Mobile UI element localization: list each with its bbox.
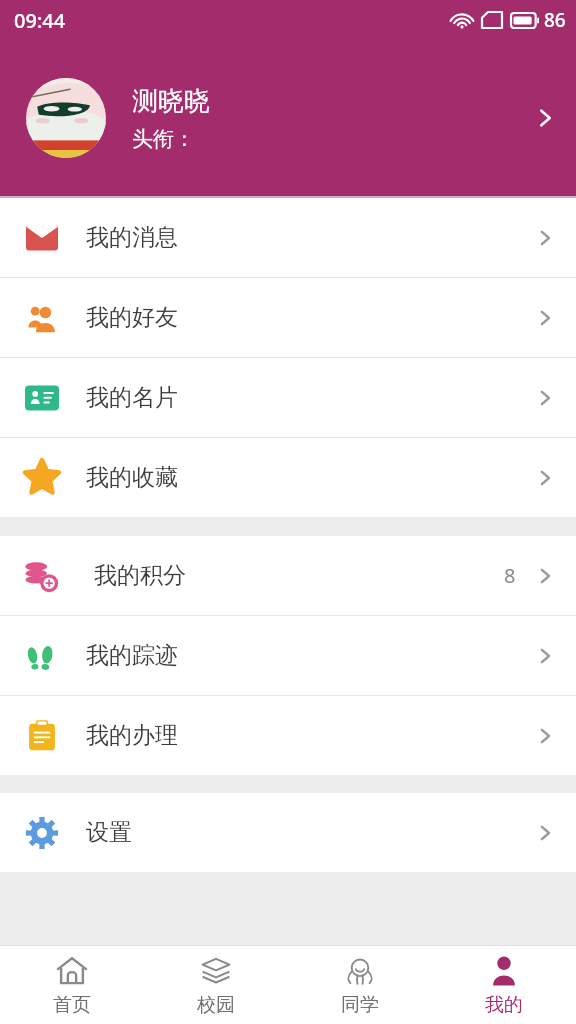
staticText: 8 (504, 562, 516, 589)
staticText: 头衔： (132, 126, 195, 152)
staticText: 09:44 (14, 7, 66, 34)
staticText: 我的好友 (86, 303, 534, 332)
staticText: 我的收藏 (86, 463, 534, 492)
staticText: 同学 (341, 993, 379, 1017)
button[interactable]: 同学 (288, 946, 432, 1024)
button[interactable]: 设置 (0, 793, 576, 872)
staticText: 首页 (53, 993, 91, 1017)
button[interactable]: 首页 (0, 946, 144, 1024)
button[interactable]: 我的收藏 (0, 438, 576, 517)
button[interactable]: 我的办理 (0, 696, 576, 775)
button[interactable]: 我的好友 (0, 278, 576, 357)
button[interactable]: 校园 (144, 946, 288, 1024)
staticText: 校园 (197, 993, 235, 1017)
button[interactable]: 我的 (432, 946, 576, 1024)
button[interactable]: 我的消息 (0, 198, 576, 277)
button[interactable]: 我的名片 (0, 358, 576, 437)
staticText: 我的踪迹 (86, 641, 534, 670)
button[interactable]: 我的积分 (0, 536, 576, 615)
staticText: 我的名片 (86, 383, 534, 412)
staticText: 我的消息 (86, 223, 534, 252)
staticText: 设置 (86, 818, 534, 847)
button[interactable]: 测晓晓 (0, 40, 576, 196)
staticText: 我的办理 (86, 721, 534, 750)
staticText: 86 (544, 7, 566, 33)
button[interactable]: 我的踪迹 (0, 616, 576, 695)
staticText: 我的积分 (94, 561, 504, 590)
staticText: 我的 (485, 993, 523, 1017)
staticText: 测晓晓 (132, 85, 210, 118)
